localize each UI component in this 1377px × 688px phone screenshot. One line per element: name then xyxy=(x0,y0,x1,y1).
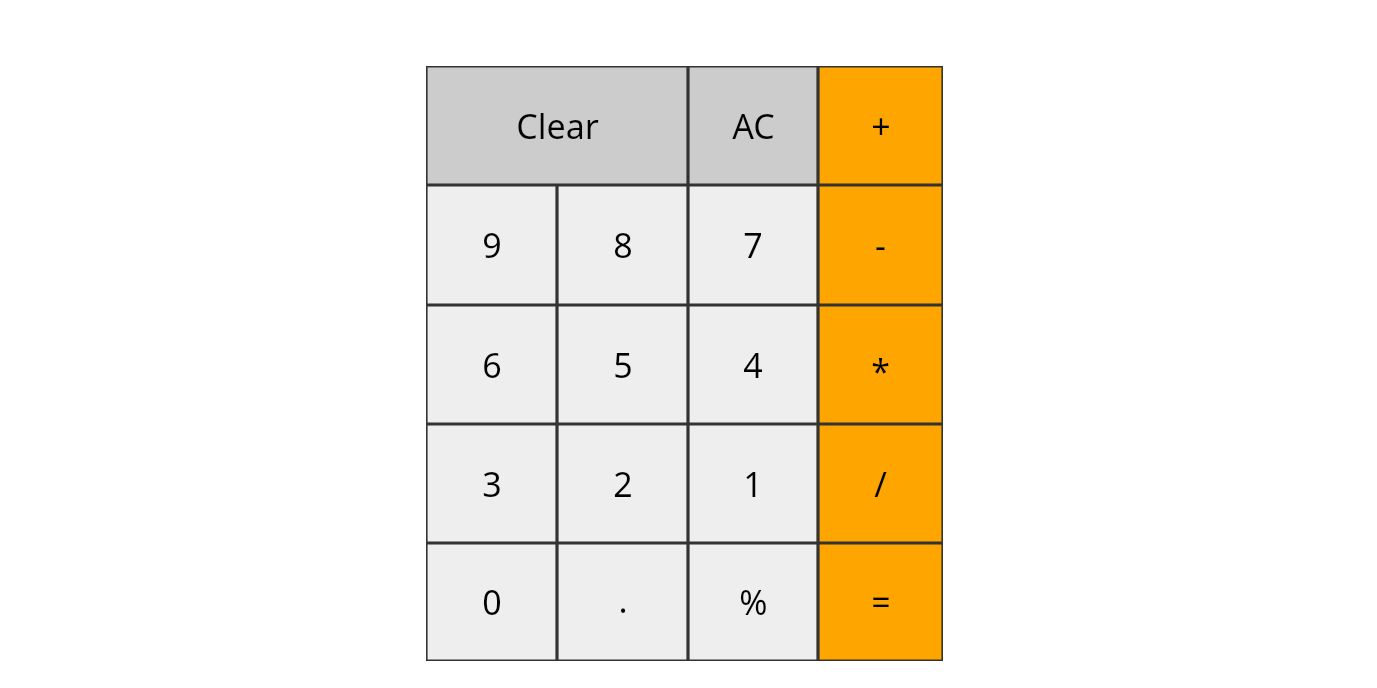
staticText: - xyxy=(875,222,886,268)
button[interactable]: AC xyxy=(688,66,818,185)
button[interactable]: 5 xyxy=(557,305,688,424)
staticText: 0 xyxy=(482,579,502,625)
button[interactable]: % xyxy=(688,543,818,661)
staticText: * xyxy=(871,348,890,394)
button[interactable]: 4 xyxy=(688,305,818,424)
staticText: 3 xyxy=(482,461,502,507)
button[interactable]: Clear xyxy=(426,66,688,185)
button[interactable]: 9 xyxy=(426,185,557,305)
button[interactable]: + xyxy=(818,66,943,185)
button[interactable]: 2 xyxy=(557,424,688,543)
button[interactable]: * xyxy=(818,305,943,424)
staticText: 8 xyxy=(613,222,633,268)
staticText: + xyxy=(871,103,891,149)
staticText: % xyxy=(739,579,768,625)
staticText: 6 xyxy=(482,342,502,388)
button[interactable]: 0 xyxy=(426,543,557,661)
staticText: Clear xyxy=(516,103,599,149)
button[interactable]: 1 xyxy=(688,424,818,543)
staticText: AC xyxy=(732,103,775,149)
button[interactable]: / xyxy=(818,424,943,543)
button[interactable]: = xyxy=(818,543,943,661)
staticText: 1 xyxy=(743,461,763,507)
button[interactable]: 6 xyxy=(426,305,557,424)
staticText: / xyxy=(874,461,887,507)
button[interactable]: 7 xyxy=(688,185,818,305)
staticText: . xyxy=(618,577,628,623)
button[interactable]: 8 xyxy=(557,185,688,305)
staticText: 5 xyxy=(613,342,633,388)
button[interactable]: 3 xyxy=(426,424,557,543)
staticText: 7 xyxy=(743,222,763,268)
staticText: 4 xyxy=(743,342,763,388)
staticText: = xyxy=(871,579,891,625)
staticText: 9 xyxy=(482,222,502,268)
button[interactable]: . xyxy=(557,543,688,661)
button[interactable]: - xyxy=(818,185,943,305)
staticText: 2 xyxy=(613,461,633,507)
